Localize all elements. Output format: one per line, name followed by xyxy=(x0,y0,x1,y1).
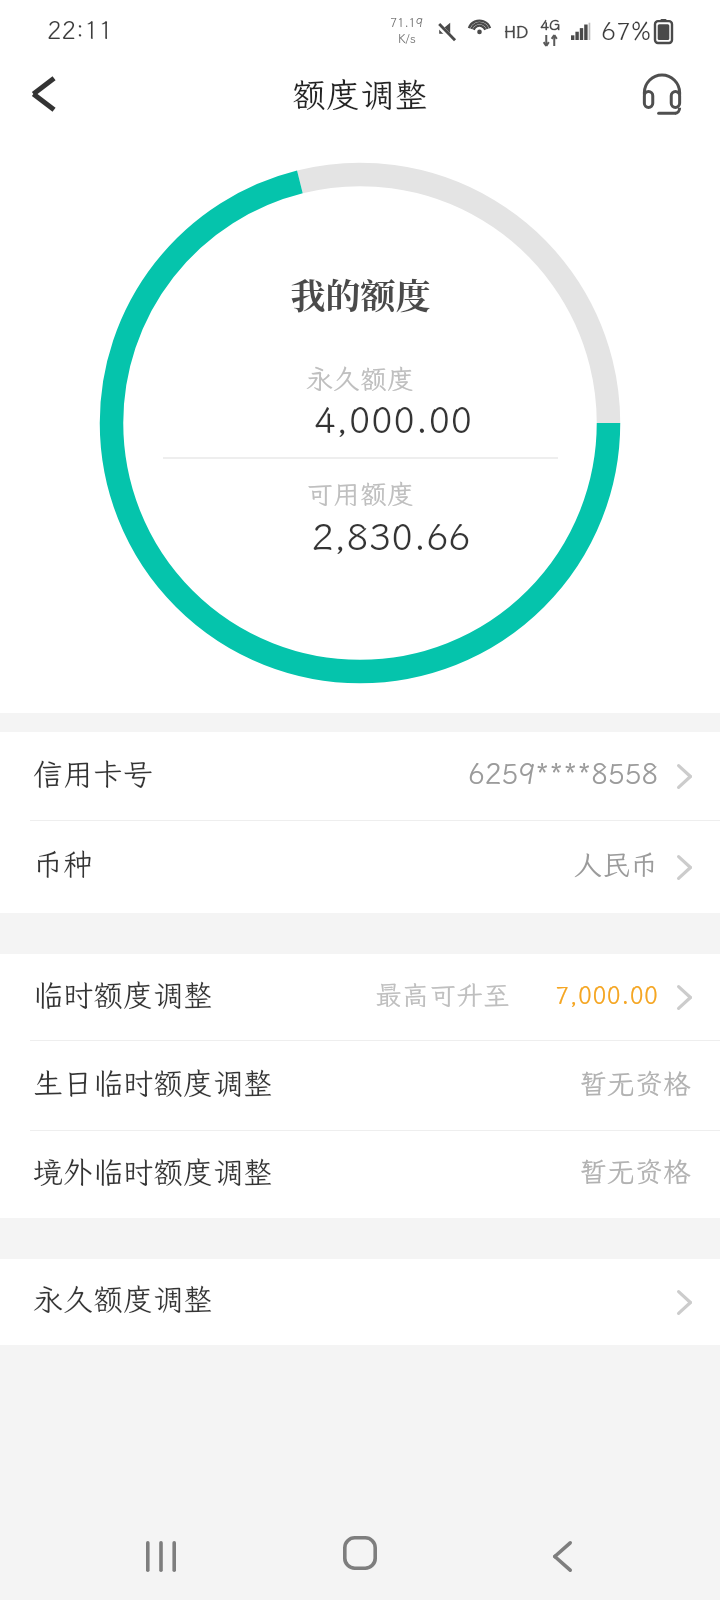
button[interactable]: 生日临时额度调整 xyxy=(0,1041,720,1131)
button[interactable]: 临时额度调整 xyxy=(0,954,720,1041)
staticText: HD xyxy=(504,20,529,42)
staticText: 最高可升至 xyxy=(375,977,510,1013)
staticText: 6259****8558 xyxy=(468,755,659,792)
button[interactable]: Recents xyxy=(115,1510,207,1600)
button[interactable]: Home xyxy=(314,1507,406,1599)
button[interactable]: Back xyxy=(516,1510,608,1600)
staticText: 生日临时额度调整 xyxy=(33,1063,273,1103)
staticText: 人民币 xyxy=(574,846,659,883)
button[interactable]: 境外临时额度调整 xyxy=(0,1131,720,1218)
staticText: 额度调整 xyxy=(292,72,428,117)
button[interactable]: 信用卡号 xyxy=(0,732,720,821)
staticText: 可用额度 xyxy=(306,476,414,512)
button[interactable]: Back xyxy=(9,60,77,128)
staticText: 22:11 xyxy=(47,14,113,46)
staticText: 信用卡号 xyxy=(33,754,153,794)
staticText: 7,000.00 xyxy=(555,979,659,1011)
staticText: 境外临时额度调整 xyxy=(33,1152,273,1192)
staticText: 67% xyxy=(601,14,652,47)
staticText: 4G xyxy=(540,15,561,35)
button[interactable]: 币种 xyxy=(0,821,720,913)
staticText: 4,000.00 xyxy=(313,395,473,444)
button[interactable]: 永久额度调整 xyxy=(0,1259,720,1345)
staticText: 2,830.66 xyxy=(311,512,471,561)
staticText: 暂无资格 xyxy=(579,1153,692,1190)
staticText: 我的额度 xyxy=(290,269,431,319)
staticText: 永久额度调整 xyxy=(33,1279,213,1319)
button[interactable]: Customer service xyxy=(633,65,691,123)
staticText: K/s xyxy=(398,31,416,47)
staticText: 永久额度 xyxy=(306,361,414,397)
staticText: 暂无资格 xyxy=(579,1065,692,1102)
staticText: 临时额度调整 xyxy=(33,975,213,1015)
staticText: 币种 xyxy=(33,844,93,884)
staticText: 71.19 xyxy=(390,15,424,31)
